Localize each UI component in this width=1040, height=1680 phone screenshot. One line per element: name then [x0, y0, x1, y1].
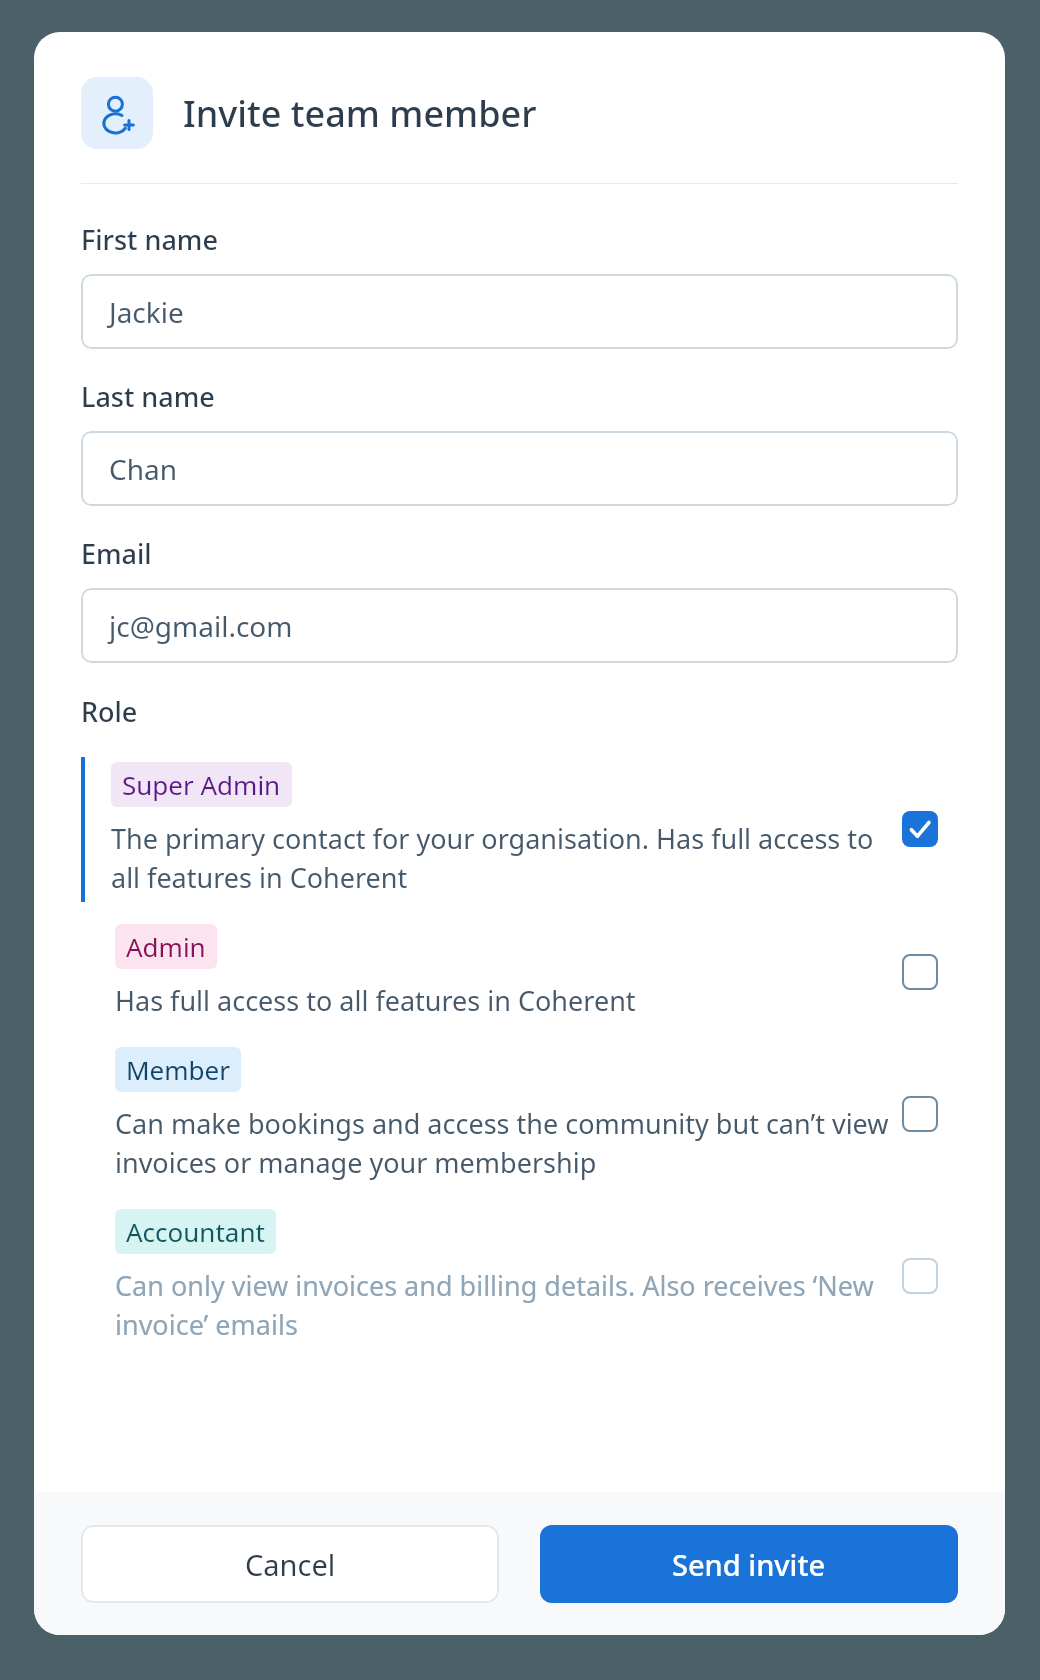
button[interactable]: jc@gmail.com	[81, 588, 958, 663]
staticText: Can only view invoices and billing detai…	[115, 1267, 890, 1343]
staticText: The primary contact for your organisatio…	[111, 820, 890, 896]
staticText: Has full access to all features in Coher…	[115, 982, 636, 1019]
staticText: Jackie	[109, 293, 184, 331]
button[interactable]: Select role	[902, 1258, 938, 1294]
staticText: Role	[81, 693, 138, 730]
staticText: Super Admin	[122, 767, 281, 802]
button[interactable]: Admin	[81, 910, 958, 1033]
button[interactable]: Cancel	[81, 1525, 499, 1603]
staticText: Cancel	[245, 1545, 336, 1584]
staticText: Member	[126, 1052, 230, 1087]
staticText: Admin	[126, 929, 206, 964]
button[interactable]: Accountant	[81, 1195, 958, 1357]
button[interactable]: Selected role	[902, 811, 938, 847]
staticText: Can make bookings and access the communi…	[115, 1105, 890, 1181]
button[interactable]: Send invite	[540, 1525, 958, 1603]
staticText: jc@gmail.com	[109, 607, 293, 645]
button[interactable]: Super Admin	[81, 748, 958, 910]
staticText: Last name	[81, 378, 215, 415]
staticText: Accountant	[126, 1214, 265, 1249]
staticText: Email	[81, 535, 152, 572]
button[interactable]: Select role	[902, 1096, 938, 1132]
button[interactable]: Chan	[81, 431, 958, 506]
staticText: First name	[81, 221, 218, 258]
button[interactable]: Select role	[902, 954, 938, 990]
staticText: Invite team member	[183, 89, 537, 138]
staticText: Send invite	[672, 1545, 826, 1584]
staticText: Chan	[109, 450, 178, 488]
button[interactable]: Jackie	[81, 274, 958, 349]
button[interactable]: Member	[81, 1033, 958, 1195]
